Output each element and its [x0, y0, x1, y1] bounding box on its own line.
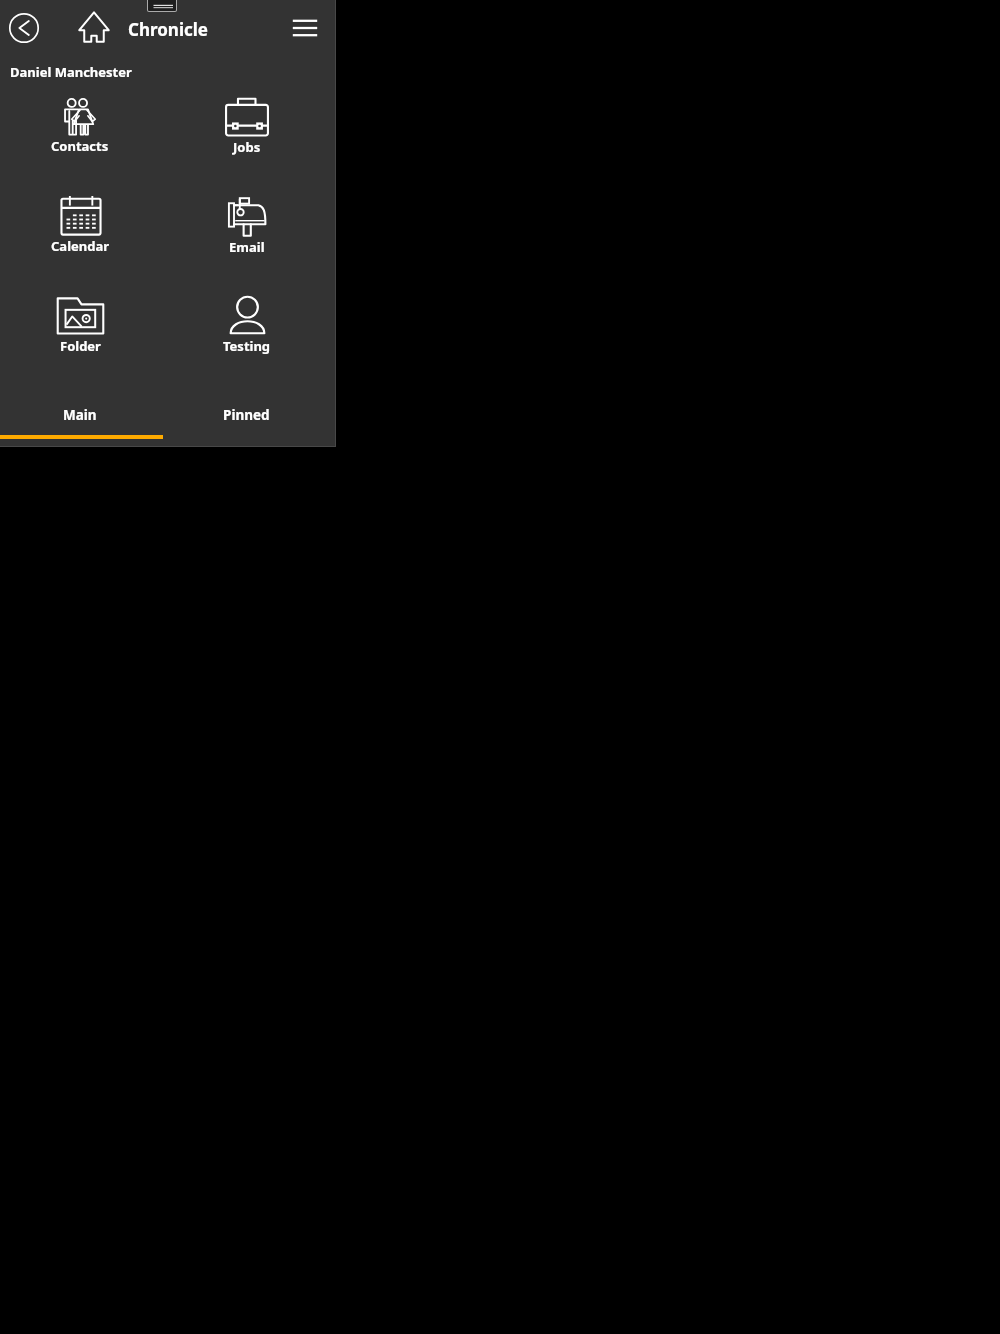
staticText: Main: [63, 406, 97, 424]
button[interactable]: Email: [192, 188, 302, 264]
staticText: Contacts: [51, 137, 109, 155]
staticText: Calendar: [51, 237, 110, 255]
button[interactable]: Folder: [25, 287, 135, 363]
button[interactable]: Contacts: [25, 88, 135, 164]
staticText: Jobs: [233, 138, 261, 156]
button[interactable]: Testing: [192, 287, 302, 363]
staticText: Daniel Manchester: [10, 63, 132, 81]
button[interactable]: Back: [2, 6, 46, 50]
button[interactable]: Pinned: [159, 400, 334, 440]
staticText: Pinned: [223, 406, 270, 424]
button[interactable]: Jobs: [192, 89, 302, 165]
button[interactable]: Main: [0, 400, 159, 440]
button[interactable]: Home: [72, 5, 116, 49]
staticText: Testing: [223, 337, 271, 355]
button[interactable]: Calendar: [25, 187, 135, 263]
staticText: Folder: [60, 337, 101, 355]
button[interactable]: Menu: [283, 6, 327, 50]
staticText: Chronicle: [128, 18, 208, 41]
staticText: Email: [229, 238, 265, 256]
